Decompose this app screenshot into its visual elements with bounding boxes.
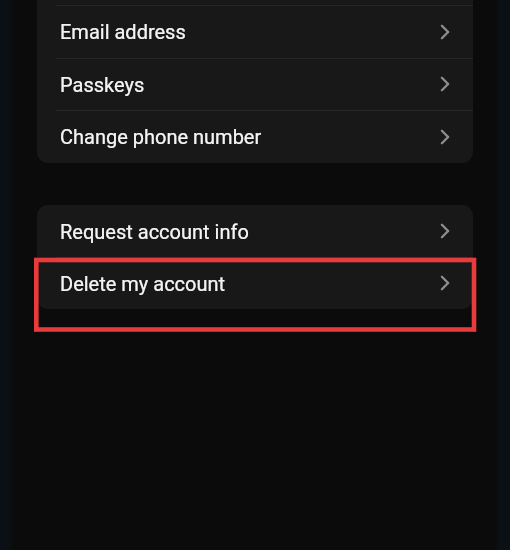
staticText: Delete my account — [60, 272, 226, 295]
other: Open — [433, 125, 457, 149]
button[interactable]: Request account info — [37, 205, 473, 257]
staticText: Change phone number — [60, 125, 262, 148]
button[interactable]: Email address — [37, 5, 473, 58]
button[interactable]: Delete my account — [37, 257, 473, 309]
staticText: Request account info — [60, 220, 249, 243]
other: Open — [433, 271, 457, 295]
button[interactable]: Change phone number — [37, 110, 473, 163]
staticText: Email address — [60, 20, 186, 43]
staticText: Passkeys — [60, 73, 145, 96]
button[interactable]: Passkeys — [37, 58, 473, 110]
other: Open — [433, 72, 457, 96]
other: Open — [433, 219, 457, 243]
other: Open — [433, 20, 457, 44]
